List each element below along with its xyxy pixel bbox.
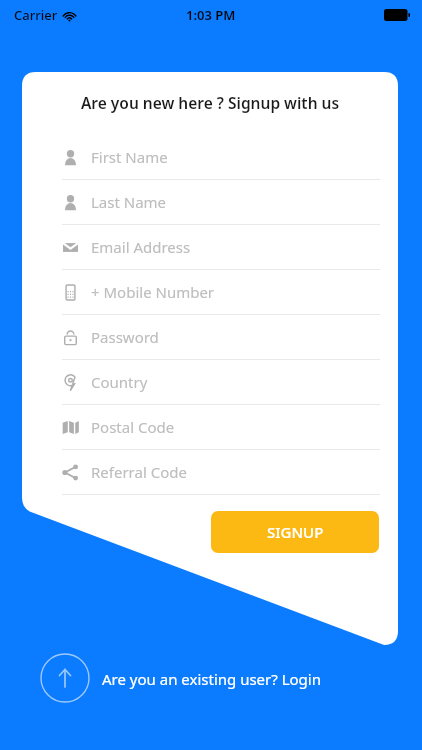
staticText: + Mobile Number <box>91 282 215 302</box>
staticText: Are you new here ? Signup with us <box>22 92 398 113</box>
button[interactable]: Email Address <box>22 225 398 270</box>
button[interactable]: Are you an existing user? Login <box>94 665 329 693</box>
staticText: Password <box>91 327 159 347</box>
button[interactable]: Password <box>22 315 398 360</box>
button[interactable]: + Mobile Number <box>22 270 398 315</box>
staticText: Last Name <box>91 192 167 212</box>
staticText: Carrier <box>14 6 58 24</box>
staticText: First Name <box>91 147 168 167</box>
button[interactable]: Postal Code <box>22 405 398 450</box>
button[interactable]: Country <box>22 360 398 405</box>
staticText: Postal Code <box>91 417 175 437</box>
button[interactable]: First Name <box>22 135 398 180</box>
staticText: Referral Code <box>91 462 187 482</box>
staticText: Are you an existing user? Login <box>102 669 321 689</box>
button[interactable]: SIGNUP <box>211 511 379 553</box>
button[interactable]: Scroll to top <box>40 653 90 703</box>
staticText: Country <box>91 372 148 392</box>
button[interactable]: Last Name <box>22 180 398 225</box>
staticText: SIGNUP <box>267 522 324 542</box>
button[interactable]: Referral Code <box>22 450 398 495</box>
staticText: Email Address <box>91 237 191 257</box>
staticText: 1:03 PM <box>186 6 236 24</box>
